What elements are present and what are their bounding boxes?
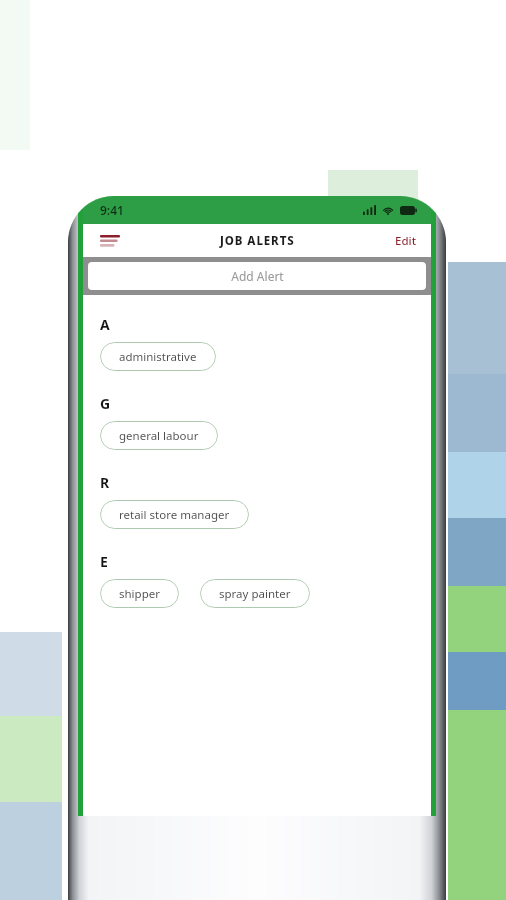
button[interactable]: retail store manager <box>100 500 249 529</box>
button[interactable]: general labour <box>100 421 218 450</box>
staticText: 9:41 <box>100 202 124 218</box>
staticText: Edit <box>395 233 417 249</box>
button[interactable]: administrative <box>100 342 216 371</box>
button[interactable]: Edit <box>387 227 425 255</box>
staticText: Add Alert <box>231 268 284 284</box>
staticText: retail store manager <box>119 507 230 523</box>
staticText: general labour <box>119 428 199 444</box>
button[interactable]: spray painter <box>200 579 310 608</box>
staticText: shipper <box>119 586 160 602</box>
staticText: E <box>100 552 108 571</box>
staticText: JOB ALERTS <box>220 233 295 249</box>
button[interactable]: Add Alert <box>88 262 426 290</box>
button[interactable]: Menu <box>95 227 125 255</box>
staticText: G <box>100 394 111 413</box>
staticText: R <box>100 473 110 492</box>
staticText: administrative <box>119 349 197 365</box>
staticText: spray painter <box>219 586 291 602</box>
staticText: A <box>100 315 110 334</box>
button[interactable]: shipper <box>100 579 179 608</box>
